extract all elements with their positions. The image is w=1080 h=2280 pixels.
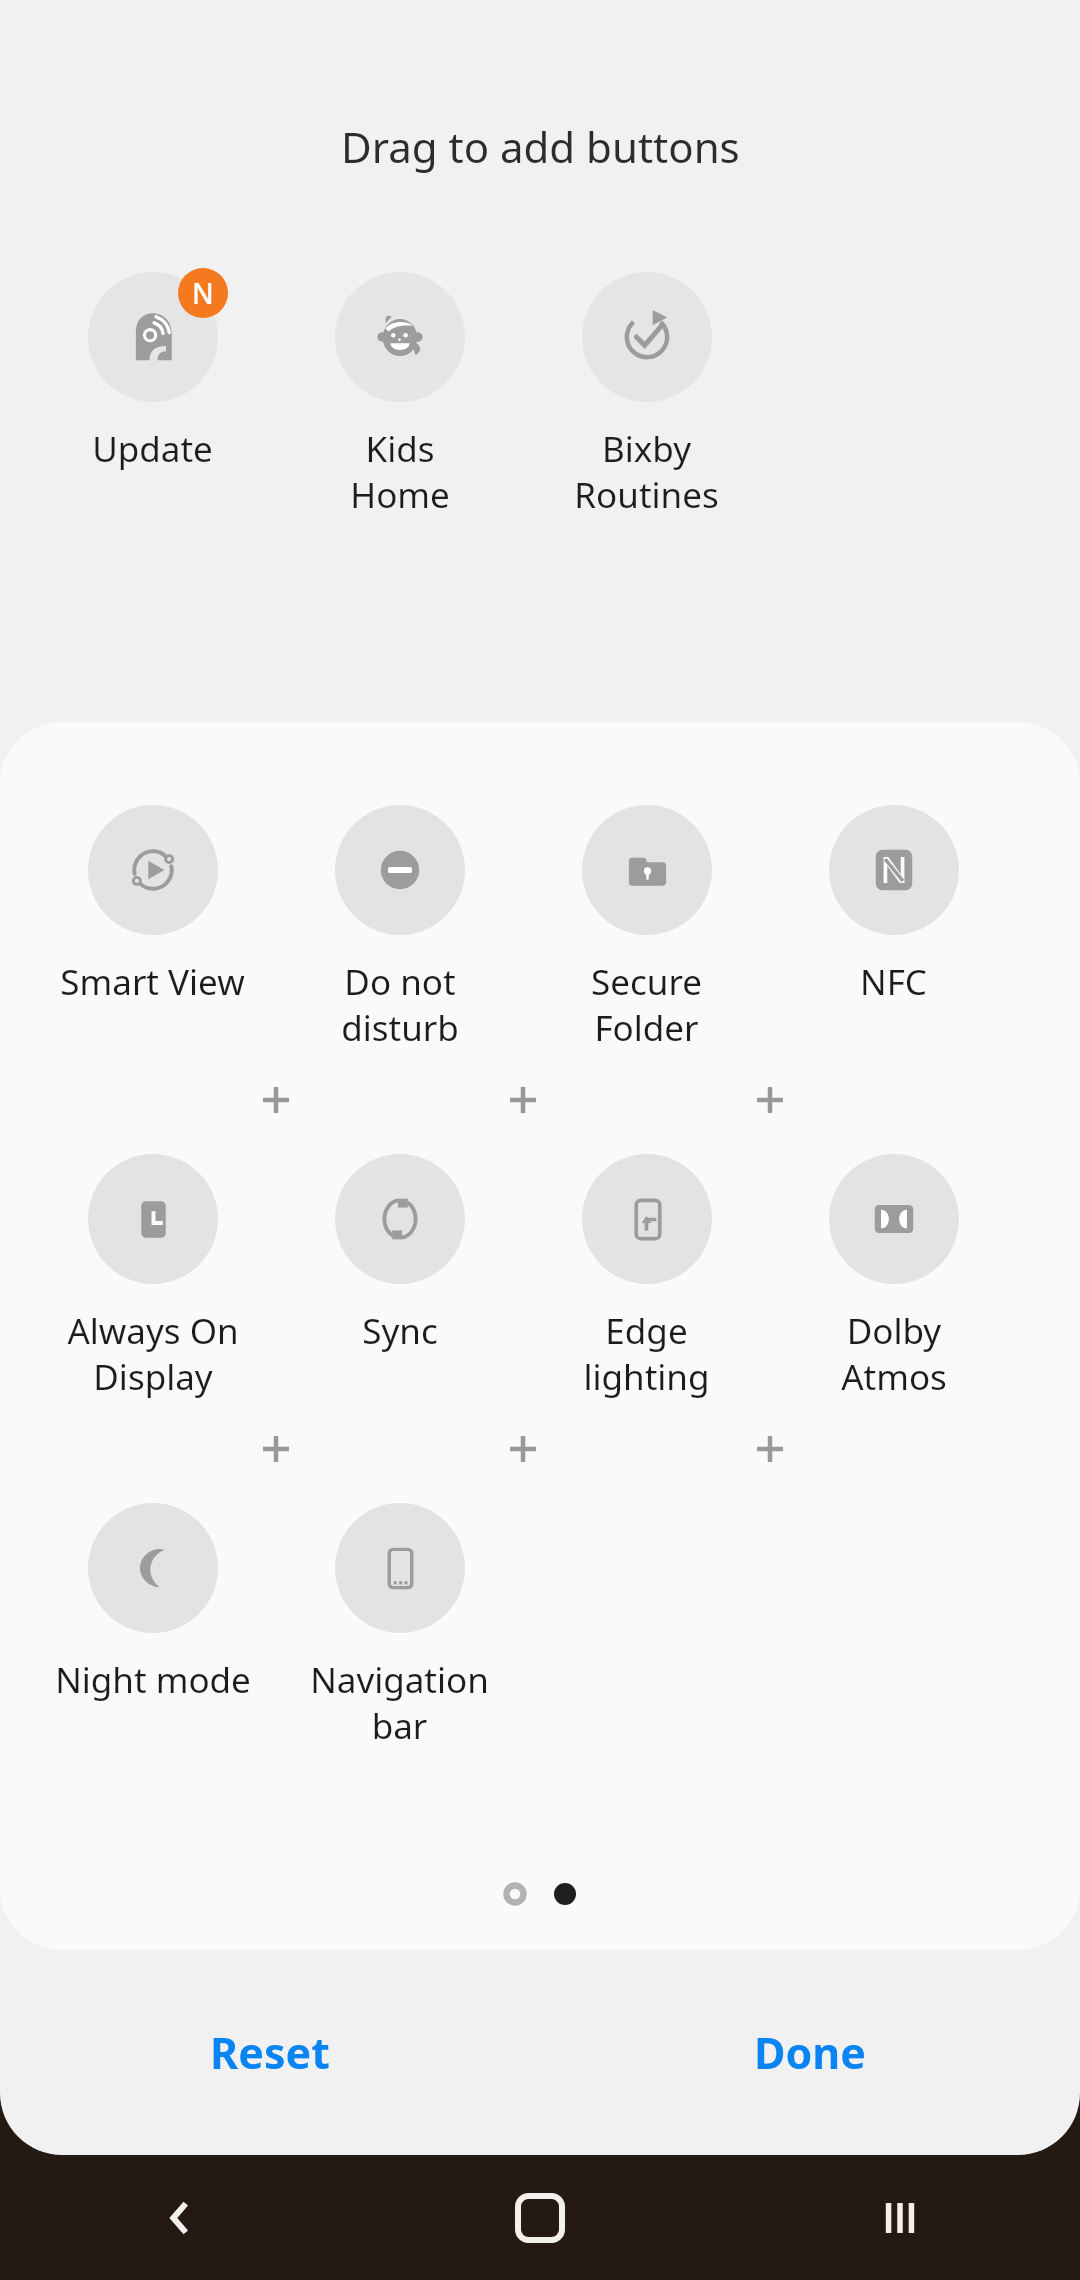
staticText: Always On Display [67,1307,239,1400]
button[interactable]: Recent apps [720,2155,1080,2280]
button[interactable]: Navigation bar [276,1480,523,1749]
staticText: NFC [860,958,927,1006]
button[interactable]: Kids Home [276,249,523,518]
button[interactable]: Smart View [29,782,276,1006]
button[interactable]: Reset [0,1950,540,2155]
button[interactable]: Done [540,1950,1080,2155]
staticText: Secure Folder [591,958,702,1051]
button[interactable]: N [29,249,276,473]
staticText: Sync [362,1307,438,1355]
staticText: Night mode [55,1656,251,1704]
staticText: Drag to add buttons [341,118,740,175]
button[interactable]: Do not disturb [276,782,523,1051]
button[interactable]: Home [360,2155,720,2280]
staticText: Kids Home [350,425,450,518]
staticText: Bixby Routines [574,425,719,518]
button[interactable]: Sync [276,1131,523,1355]
staticText: Done [754,2023,866,2082]
button[interactable]: Night mode [29,1480,276,1704]
button[interactable]: Bixby Routines [523,249,770,518]
button[interactable]: Always On Display [29,1131,276,1400]
staticText: N [192,274,214,312]
staticText: Smart View [60,958,245,1006]
staticText: Reset [210,2023,330,2082]
button[interactable]: NFC [770,782,1017,1006]
button[interactable]: Edge lighting [523,1131,770,1400]
button[interactable]: Secure Folder [523,782,770,1051]
staticText: Update [92,425,213,473]
staticText: Navigation bar [310,1656,489,1749]
staticText: Dolby Atmos [841,1307,947,1400]
button[interactable]: Dolby Atmos [770,1131,1017,1400]
staticText: Do not disturb [341,958,459,1051]
staticText: Edge lighting [583,1307,710,1400]
button[interactable]: Back [0,2155,360,2280]
